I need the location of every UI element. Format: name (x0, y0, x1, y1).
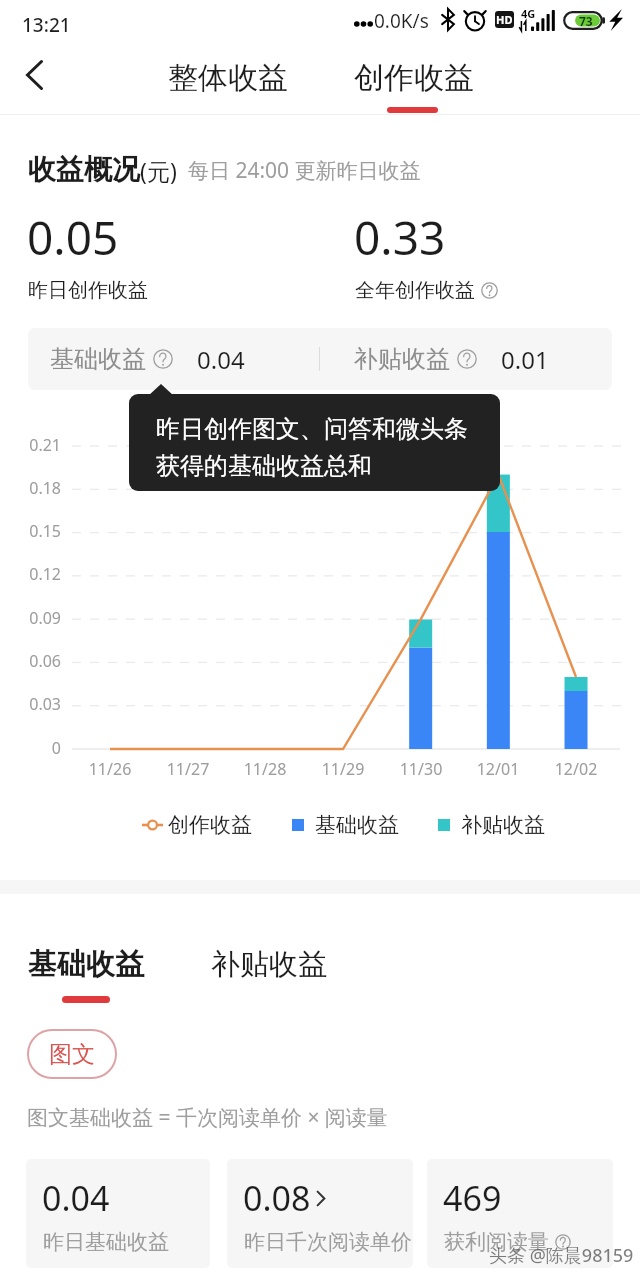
staticText: 基础收益 (50, 344, 146, 374)
staticText: 12/02 (536, 758, 616, 780)
button[interactable]: Back (10, 51, 58, 99)
staticText: 0.01 (501, 343, 549, 376)
staticText: 补贴收益 (461, 812, 545, 838)
staticText: 基础收益 (315, 812, 399, 838)
button[interactable]: 补贴收益 (438, 812, 545, 838)
staticText: 0.04 (197, 343, 245, 376)
button[interactable]: 0.08 (227, 1159, 413, 1268)
staticText: 4G (521, 6, 536, 21)
staticText: 0.08 (243, 1175, 311, 1221)
staticText: 12/01 (458, 758, 538, 780)
button[interactable]: 0.04 (26, 1159, 210, 1268)
staticText: 昨日千次阅读单价 (244, 1229, 412, 1255)
staticText: 创作收益 (168, 812, 252, 838)
staticText: 469 (443, 1175, 502, 1221)
staticText: 0.03 (0, 693, 61, 715)
staticText: 创作收益 (354, 59, 474, 97)
staticText: 0.06 (0, 650, 61, 672)
staticText: 收益概况 (28, 152, 140, 187)
button[interactable]: 创作收益 legend (142, 812, 252, 838)
staticText: 头条 @陈晨98159 (489, 1243, 634, 1268)
staticText: 11/27 (148, 758, 228, 780)
staticText: 11/28 (225, 758, 305, 780)
staticText: 13:21 (22, 12, 71, 38)
button[interactable]: Help (555, 1234, 571, 1250)
button[interactable]: 469 (427, 1159, 613, 1268)
staticText: 全年创作收益 (355, 278, 475, 303)
staticText: 11/29 (303, 758, 383, 780)
button[interactable]: 图文 (27, 1029, 117, 1079)
staticText: 0.12 (0, 563, 61, 585)
button[interactable]: 创作收益 (335, 53, 492, 103)
button[interactable]: 基础收益 (292, 812, 399, 838)
button[interactable]: Help (153, 349, 173, 369)
staticText: 0.04 (42, 1175, 110, 1221)
staticText: 获得的基础收益总和 (156, 451, 372, 481)
button[interactable]: Help (457, 349, 477, 369)
staticText: 补贴收益 (354, 344, 450, 374)
staticText: 获利阅读量 (444, 1229, 549, 1255)
staticText: 图文 (49, 1040, 95, 1069)
staticText: 基础收益 (28, 946, 144, 983)
staticText: 0 (0, 737, 61, 759)
staticText: 11/30 (381, 758, 461, 780)
staticText: 每日 24:00 更新昨日收益 (188, 156, 421, 185)
button[interactable]: Help (481, 282, 498, 299)
staticText: 0.15 (0, 520, 61, 542)
staticText: 图文基础收益 = 千次阅读单价 × 阅读量 (27, 1103, 388, 1132)
staticText: 73 (579, 13, 593, 29)
staticText: 0.21 (0, 434, 61, 456)
staticText: 0.33 (354, 206, 446, 269)
staticText: 0.18 (0, 477, 61, 499)
staticText: 0.09 (0, 607, 61, 629)
staticText: 0.05 (27, 206, 119, 269)
staticText: 0.0K/s (374, 8, 429, 34)
staticText: 昨日创作收益 (28, 278, 148, 303)
button[interactable]: 基础收益 (8, 938, 163, 990)
staticText: 昨日基础收益 (43, 1229, 169, 1255)
staticText: 11/26 (70, 758, 150, 780)
staticText: HD (496, 12, 513, 27)
staticText: 昨日创作图文、问答和微头条 (156, 414, 468, 444)
staticText: (元) (140, 155, 177, 186)
staticText: 补贴收益 (211, 946, 327, 983)
button[interactable]: 补贴收益 (191, 938, 346, 990)
button[interactable]: 整体收益 (147, 53, 308, 103)
staticText: 整体收益 (168, 59, 288, 97)
